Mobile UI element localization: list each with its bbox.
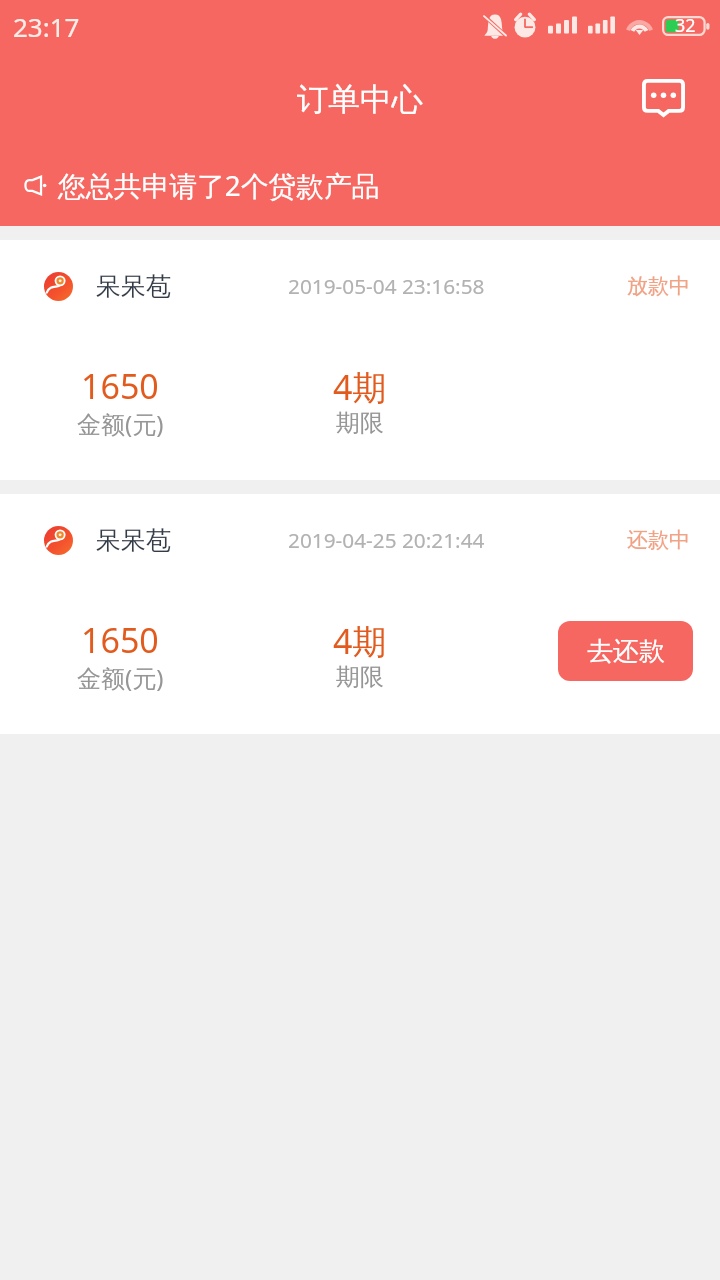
staticText: 金额(元) — [77, 661, 164, 694]
staticText: 4期 — [333, 364, 387, 410]
button[interactable]: 呆呆苞 — [0, 240, 720, 480]
staticText: 您总共申请了2个贷款产品 — [58, 166, 380, 204]
staticText: 放款中 — [627, 273, 690, 299]
staticText: 去还款 — [587, 635, 665, 668]
staticText: 2019-04-25 20:21:44 — [288, 526, 485, 554]
staticText: 呆呆苞 — [96, 525, 171, 556]
staticText: 还款中 — [627, 527, 690, 553]
button[interactable]: 去还款 — [558, 621, 693, 681]
staticText: 23:17 — [13, 9, 80, 44]
staticText: 订单中心 — [297, 80, 423, 120]
staticText: 呆呆苞 — [96, 271, 171, 302]
staticText: 期限 — [336, 408, 384, 438]
staticText: 2019-05-04 23:16:58 — [288, 272, 485, 300]
staticText: 金额(元) — [77, 407, 164, 440]
staticText: 1650 — [81, 617, 159, 663]
button[interactable]: Messages — [635, 70, 691, 126]
staticText: 32 — [675, 13, 696, 38]
staticText: 4期 — [333, 618, 387, 664]
staticText: 1650 — [81, 363, 159, 409]
button[interactable]: 呆呆苞 — [0, 494, 720, 734]
staticText: 期限 — [336, 662, 384, 692]
